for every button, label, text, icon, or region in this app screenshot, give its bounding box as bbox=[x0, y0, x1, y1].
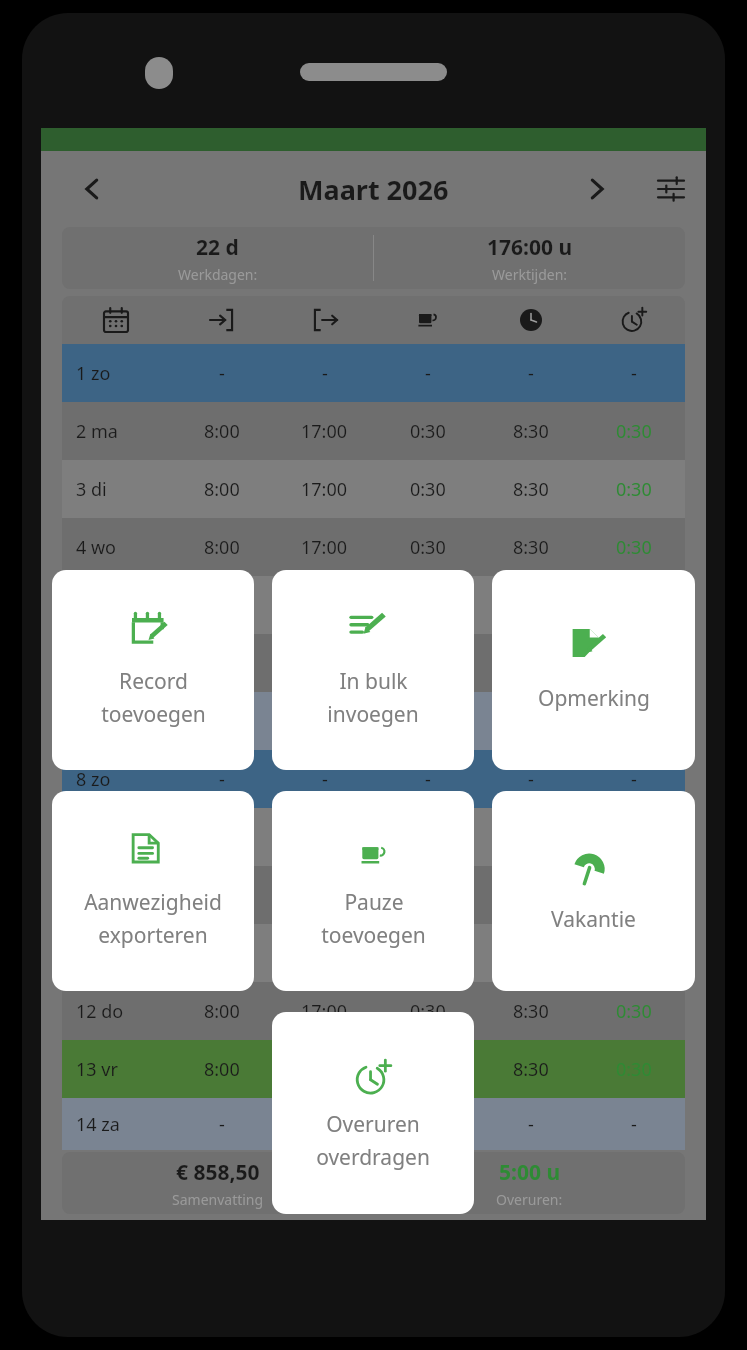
staticText: - bbox=[425, 361, 431, 386]
button[interactable]: 1 zo bbox=[62, 344, 685, 402]
staticText: 17:00 bbox=[301, 535, 348, 560]
button[interactable]: Filter bbox=[646, 164, 696, 214]
staticText: - bbox=[425, 767, 431, 792]
staticText: 8:00 bbox=[204, 477, 240, 502]
staticText: 22 d bbox=[196, 233, 239, 262]
button[interactable]: Pauze bbox=[272, 791, 474, 991]
staticText: Vakantie bbox=[551, 905, 636, 934]
staticText: In bulk bbox=[339, 667, 408, 696]
button[interactable]: 5 do bbox=[62, 576, 685, 634]
staticText: Aanwezigheid bbox=[84, 888, 222, 917]
staticText: overdragen bbox=[316, 1143, 430, 1172]
staticText: 0:30 bbox=[616, 535, 652, 560]
staticText: 5:00 u bbox=[499, 1158, 561, 1187]
staticText: 8:00 bbox=[204, 999, 240, 1024]
button[interactable]: 8 zo bbox=[62, 750, 685, 808]
staticText: 0:30 bbox=[616, 419, 652, 444]
staticText: 0:30 bbox=[616, 999, 652, 1024]
staticText: 14 za bbox=[76, 1112, 120, 1137]
staticText: 1 zo bbox=[76, 361, 111, 386]
staticText: - bbox=[219, 1112, 225, 1137]
button[interactable]: 14 za bbox=[62, 1098, 685, 1150]
staticText: 3 di bbox=[76, 477, 107, 502]
staticText: 4 wo bbox=[76, 535, 117, 560]
button[interactable]: Vorige maand bbox=[67, 164, 117, 214]
staticText: Overuren: bbox=[496, 1190, 563, 1209]
staticText: 12 do bbox=[76, 999, 124, 1024]
button[interactable]: 3 di bbox=[62, 460, 685, 518]
staticText: Pauze bbox=[344, 888, 404, 917]
staticText: 8 zo bbox=[76, 767, 111, 792]
staticText: 8:30 bbox=[513, 477, 549, 502]
staticText: 0:30 bbox=[410, 535, 446, 560]
staticText: - bbox=[322, 361, 328, 386]
button[interactable]: 6 vr bbox=[62, 634, 685, 692]
staticText: - bbox=[322, 1112, 328, 1137]
button[interactable]: Vakantie bbox=[492, 791, 695, 991]
staticText: - bbox=[528, 1112, 534, 1137]
button[interactable]: 9 ma bbox=[62, 808, 685, 866]
staticText: toevoegen bbox=[101, 700, 206, 729]
button[interactable]: Aanwezigheid bbox=[52, 791, 254, 991]
staticText: 0:30 bbox=[410, 477, 446, 502]
button[interactable]: Opmerking bbox=[492, 570, 695, 770]
button[interactable]: Volgende maand bbox=[572, 164, 622, 214]
staticText: 8:00 bbox=[204, 1057, 240, 1082]
staticText: - bbox=[631, 767, 637, 792]
button[interactable]: 12 do bbox=[62, 982, 685, 1040]
staticText: toevoegen bbox=[321, 921, 426, 950]
button[interactable]: 7 za bbox=[62, 692, 685, 750]
button[interactable]: 10 di bbox=[62, 866, 685, 924]
button[interactable]: 4 wo bbox=[62, 518, 685, 576]
button[interactable]: Overuren bbox=[272, 1012, 474, 1214]
staticText: Samenvatting bbox=[172, 1190, 264, 1209]
staticText: Record bbox=[119, 667, 188, 696]
staticText: 0:30 bbox=[616, 477, 652, 502]
button[interactable]: 2 ma bbox=[62, 402, 685, 460]
staticText: - bbox=[528, 361, 534, 386]
button[interactable]: 13 vr bbox=[62, 1040, 685, 1098]
staticText: 17:00 bbox=[301, 999, 348, 1024]
staticText: 11 wo bbox=[76, 941, 127, 966]
button[interactable]: In bulk bbox=[272, 570, 474, 770]
staticText: - bbox=[528, 767, 534, 792]
staticText: 176:00 u bbox=[487, 233, 573, 262]
staticText: - bbox=[219, 361, 225, 386]
staticText: 8:00 bbox=[204, 535, 240, 560]
staticText: - bbox=[322, 767, 328, 792]
staticText: 10 di bbox=[76, 883, 117, 908]
staticText: 13 vr bbox=[76, 1057, 118, 1082]
staticText: 17:00 bbox=[301, 419, 348, 444]
staticText: 2 ma bbox=[76, 419, 118, 444]
button[interactable]: 11 wo bbox=[62, 924, 685, 982]
staticText: 8:30 bbox=[513, 535, 549, 560]
staticText: 8:30 bbox=[513, 419, 549, 444]
button[interactable]: Record bbox=[52, 570, 254, 770]
staticText: € 858,50 bbox=[176, 1158, 260, 1187]
staticText: 0:30 bbox=[410, 999, 446, 1024]
staticText: 0:30 bbox=[616, 1057, 652, 1082]
staticText: Maart 2026 bbox=[298, 171, 449, 208]
